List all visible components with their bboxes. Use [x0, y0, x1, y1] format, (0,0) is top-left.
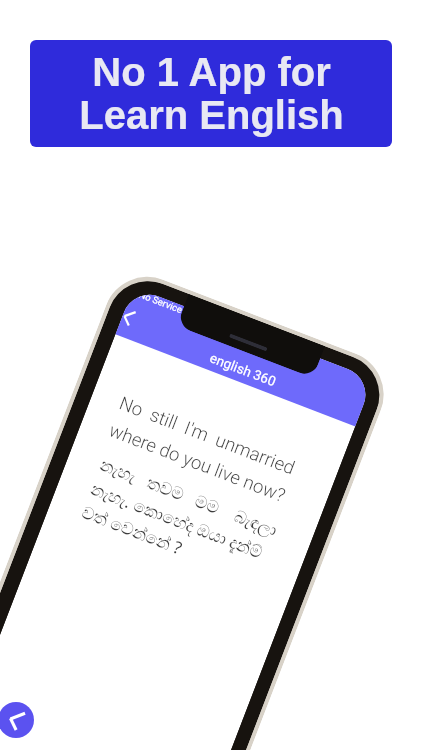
button[interactable]: No Service: [115, 287, 374, 426]
button[interactable]: No 1 App for Learn English: [30, 40, 392, 147]
button[interactable]: Back: [0, 702, 34, 738]
button[interactable]: Back: [118, 304, 147, 335]
staticText: english 360: [208, 349, 279, 389]
staticText: No still I'm unmarried where do you live…: [106, 392, 299, 506]
button[interactable]: [49, 356, 336, 621]
staticText: නැහැ තවම මම බැඳලා නැහැ. කොහේද ඔයා දැන්ම්…: [79, 452, 281, 589]
staticText: No Service: [137, 289, 184, 315]
staticText: No 1 App for Learn English: [79, 50, 344, 138]
